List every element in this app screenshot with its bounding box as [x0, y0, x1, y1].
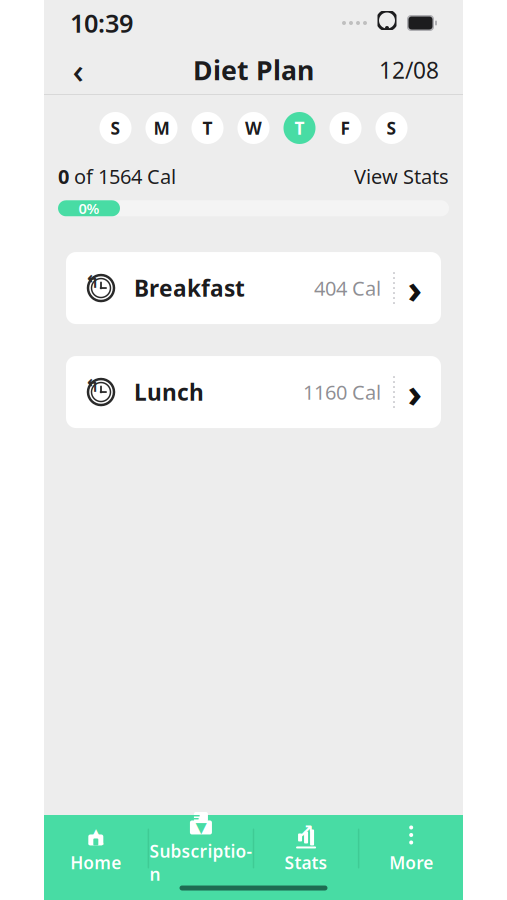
button[interactable]: ▲	[44, 820, 148, 876]
button[interactable]: M	[144, 111, 178, 145]
button[interactable]: Back	[56, 48, 100, 92]
staticText: ↰	[85, 376, 100, 396]
staticText: ▼	[195, 819, 206, 836]
staticText: W	[245, 116, 262, 139]
staticText: View Stats	[354, 163, 449, 190]
staticText: ›	[407, 261, 422, 315]
staticText: of 1564 Cal	[69, 163, 176, 190]
staticText: Lunch	[134, 377, 204, 407]
staticText: 0	[58, 163, 69, 190]
staticText: 10:39	[70, 6, 133, 40]
button[interactable]: View Stats	[354, 163, 449, 190]
staticText: Diet Plan	[193, 52, 314, 88]
button[interactable]: ▼	[149, 820, 253, 876]
staticText: ‹	[72, 47, 83, 93]
staticText: More	[389, 851, 433, 874]
staticText: M	[153, 116, 169, 139]
button[interactable]: ↰	[44, 356, 463, 428]
button[interactable]: More	[359, 820, 463, 876]
button[interactable]: T	[282, 111, 316, 145]
button[interactable]: T	[190, 111, 224, 145]
button[interactable]: S	[374, 111, 408, 145]
button[interactable]: ↗	[254, 820, 358, 876]
button[interactable]: ↰	[44, 252, 463, 324]
button[interactable]: S	[98, 111, 132, 145]
staticText: ▲	[88, 824, 103, 846]
staticText: Breakfast	[134, 273, 245, 303]
staticText: ↗	[298, 820, 314, 842]
staticText: 12/08	[379, 55, 439, 85]
staticText: 404 Cal	[314, 275, 381, 301]
staticText: ↰	[85, 272, 100, 292]
button[interactable]: F	[328, 111, 362, 145]
staticText: Subscription	[149, 839, 252, 885]
staticText: S	[386, 116, 396, 139]
staticText: Stats	[285, 851, 328, 874]
staticText: 0%	[78, 199, 99, 218]
staticText: S	[110, 116, 120, 139]
staticText: T	[294, 116, 304, 139]
button[interactable]: 12/08	[367, 48, 451, 92]
button[interactable]: W	[236, 111, 270, 145]
staticText: F	[340, 116, 350, 139]
staticText: 1160 Cal	[303, 379, 381, 405]
staticText: T	[202, 116, 212, 139]
staticText: Home	[70, 851, 121, 874]
staticText: ›	[407, 365, 422, 419]
